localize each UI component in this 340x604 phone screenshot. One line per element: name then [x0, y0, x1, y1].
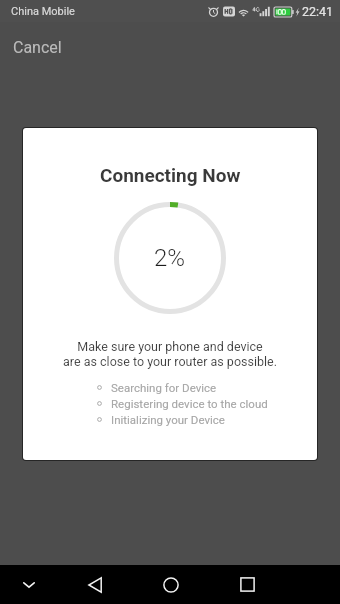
- button[interactable]: Cancel: [0, 32, 75, 62]
- staticText: China Mobile: [11, 5, 75, 18]
- staticText: Registering device to the cloud: [111, 397, 268, 410]
- staticText: 22:41: [302, 4, 334, 19]
- button[interactable]: Recents: [209, 565, 285, 604]
- staticText: Connecting Now: [100, 164, 241, 186]
- staticText: Searching for Device: [111, 381, 217, 394]
- staticText: 2%: [154, 244, 186, 272]
- staticText: Cancel: [13, 38, 62, 57]
- button[interactable]: Back: [57, 565, 133, 604]
- button[interactable]: Hide keyboard: [0, 565, 57, 604]
- staticText: Make sure your phone and device are as c…: [63, 339, 277, 369]
- button[interactable]: Home: [133, 565, 209, 604]
- staticText: Initializing your Device: [111, 413, 225, 426]
